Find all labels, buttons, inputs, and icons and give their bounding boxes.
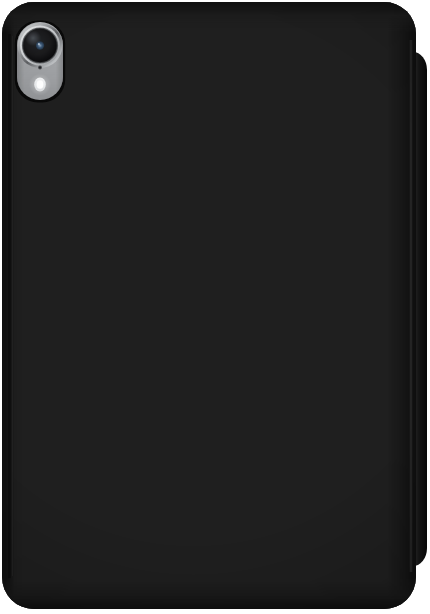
button[interactable]: Black tablet folio case, back view (0, 0, 430, 614)
